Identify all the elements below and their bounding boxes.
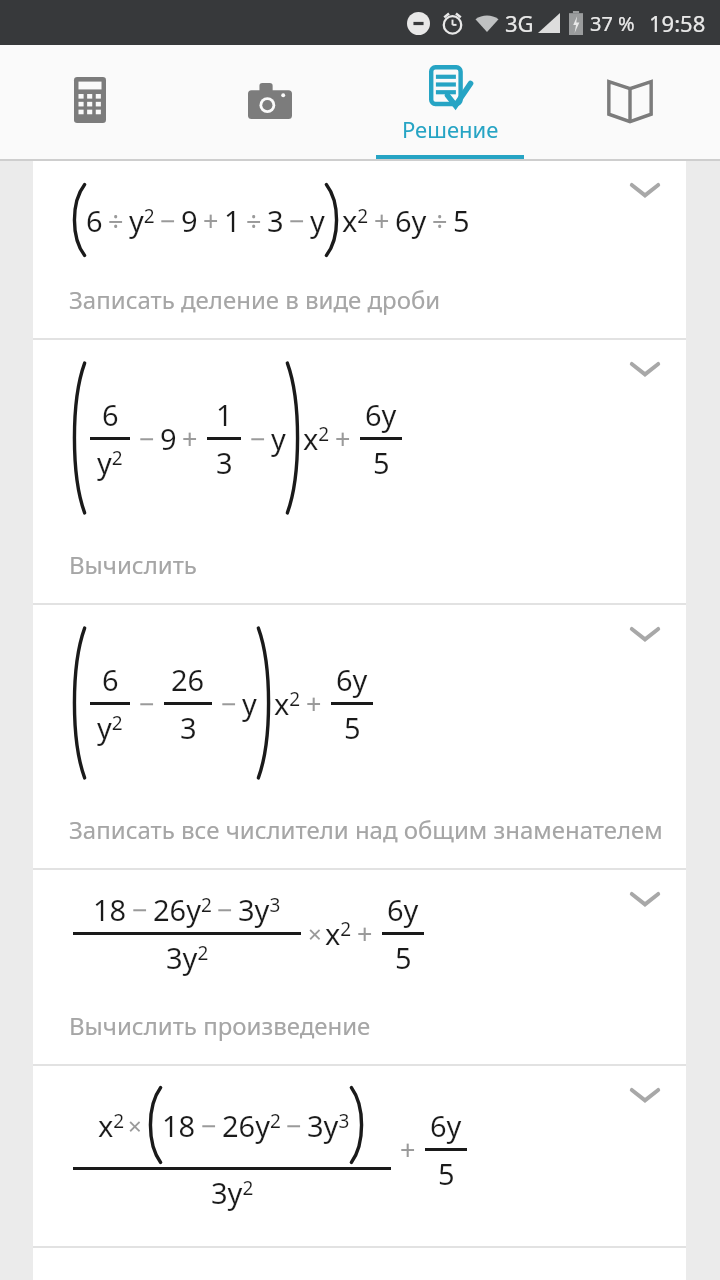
staticText: 1 [216, 395, 233, 434]
staticText: − [132, 891, 148, 928]
staticText: x2 [325, 914, 352, 953]
staticText: y [242, 684, 257, 723]
staticText: − [160, 202, 176, 239]
staticText: 6y [336, 660, 368, 699]
button[interactable]: Развернуть [630, 1086, 660, 1104]
staticText: 5 [395, 938, 412, 977]
staticText: + [335, 420, 351, 457]
staticText: 37 % [590, 10, 635, 37]
staticText: Решение [402, 114, 499, 144]
staticText: Вычислить произведение [69, 1009, 371, 1042]
button[interactable]: Развернуть [630, 360, 660, 378]
staticText: 18 [93, 890, 127, 929]
button[interactable]: Развернуть [630, 890, 660, 908]
staticText: 26y2 [222, 1106, 281, 1145]
staticText: − [221, 685, 237, 722]
staticText: 3 [267, 201, 284, 240]
staticText: 5 [373, 443, 390, 482]
staticText: − [139, 685, 155, 722]
staticText: Вычислить [69, 548, 197, 581]
staticText: + [182, 420, 198, 457]
staticText: ÷ [108, 202, 124, 239]
staticText: 3y3 [238, 890, 281, 929]
staticText: 1 [224, 201, 241, 240]
staticText: 5 [438, 1154, 455, 1193]
button[interactable]: 18 [33, 870, 686, 1064]
staticText: + [357, 915, 373, 952]
staticText: ÷ [246, 202, 262, 239]
staticText: × [128, 1109, 142, 1142]
button[interactable]: Развернуть [630, 625, 660, 643]
staticText: 18 [162, 1106, 196, 1145]
staticText: 6y [395, 201, 427, 240]
staticText: x2 [342, 201, 369, 240]
staticText: 6y [365, 395, 397, 434]
staticText: y [310, 201, 325, 240]
staticText: y2 [97, 443, 123, 482]
staticText: y [271, 419, 286, 458]
button[interactable]: Камера [180, 45, 360, 161]
staticText: − [217, 891, 233, 928]
staticText: − [201, 1107, 217, 1144]
staticText: x2 [303, 419, 330, 458]
button[interactable]: Калькулятор [0, 45, 180, 161]
staticText: × [308, 917, 322, 950]
staticText: 6y [387, 890, 419, 929]
staticText: 3y3 [307, 1106, 350, 1145]
staticText: Записать все числители над общим знамена… [69, 813, 663, 846]
staticText: 6 [102, 395, 119, 434]
staticText: x2 [98, 1106, 125, 1145]
staticText: ÷ [432, 202, 448, 239]
button[interactable]: Справочник [540, 45, 720, 161]
staticText: + [374, 202, 390, 239]
staticText: + [306, 685, 322, 722]
staticText: 3 [216, 443, 233, 482]
staticText: 3y2 [166, 938, 209, 977]
staticText: 6y [430, 1106, 462, 1145]
button[interactable]: 6 [33, 340, 686, 603]
staticText: 19:58 [649, 8, 706, 38]
staticText: 26 [171, 660, 205, 699]
staticText: 3y2 [211, 1173, 254, 1212]
staticText: 3 [180, 708, 197, 747]
staticText: 9 [181, 201, 198, 240]
staticText: y2 [129, 201, 155, 240]
button[interactable]: x2 [33, 1066, 686, 1246]
staticText: 6 [86, 201, 103, 240]
button[interactable]: Развернуть [630, 181, 660, 199]
staticText: − [286, 1107, 302, 1144]
staticText: − [139, 420, 155, 457]
button[interactable]: Решение [360, 45, 540, 161]
staticText: + [203, 202, 219, 239]
staticText: − [250, 420, 266, 457]
staticText: − [289, 202, 305, 239]
staticText: 9 [160, 419, 177, 458]
staticText: 3G [505, 8, 534, 38]
staticText: + [400, 1131, 416, 1168]
button[interactable]: 6 [33, 605, 686, 868]
button[interactable]: 6 [33, 161, 686, 338]
staticText: y2 [97, 708, 123, 747]
staticText: 5 [453, 201, 470, 240]
staticText: 26y2 [153, 890, 212, 929]
staticText: Записать деление в виде дроби [69, 283, 441, 316]
staticText: 6 [102, 660, 119, 699]
staticText: 5 [344, 708, 361, 747]
staticText: x2 [274, 684, 301, 723]
